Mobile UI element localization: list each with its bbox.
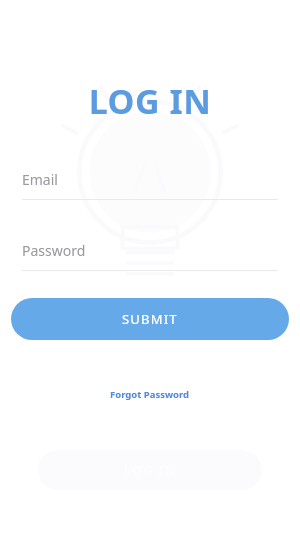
button[interactable]: Password	[22, 241, 278, 271]
staticText: Forgot Password	[110, 388, 190, 401]
staticText: LOG IN	[0, 78, 300, 124]
button[interactable]: Forgot Password	[102, 384, 198, 405]
button[interactable]: Email	[22, 170, 278, 200]
staticText: Email	[22, 170, 58, 189]
staticText: SUBMIT	[122, 310, 178, 328]
button[interactable]: SUBMIT	[11, 298, 289, 340]
staticText: Password	[22, 241, 86, 260]
